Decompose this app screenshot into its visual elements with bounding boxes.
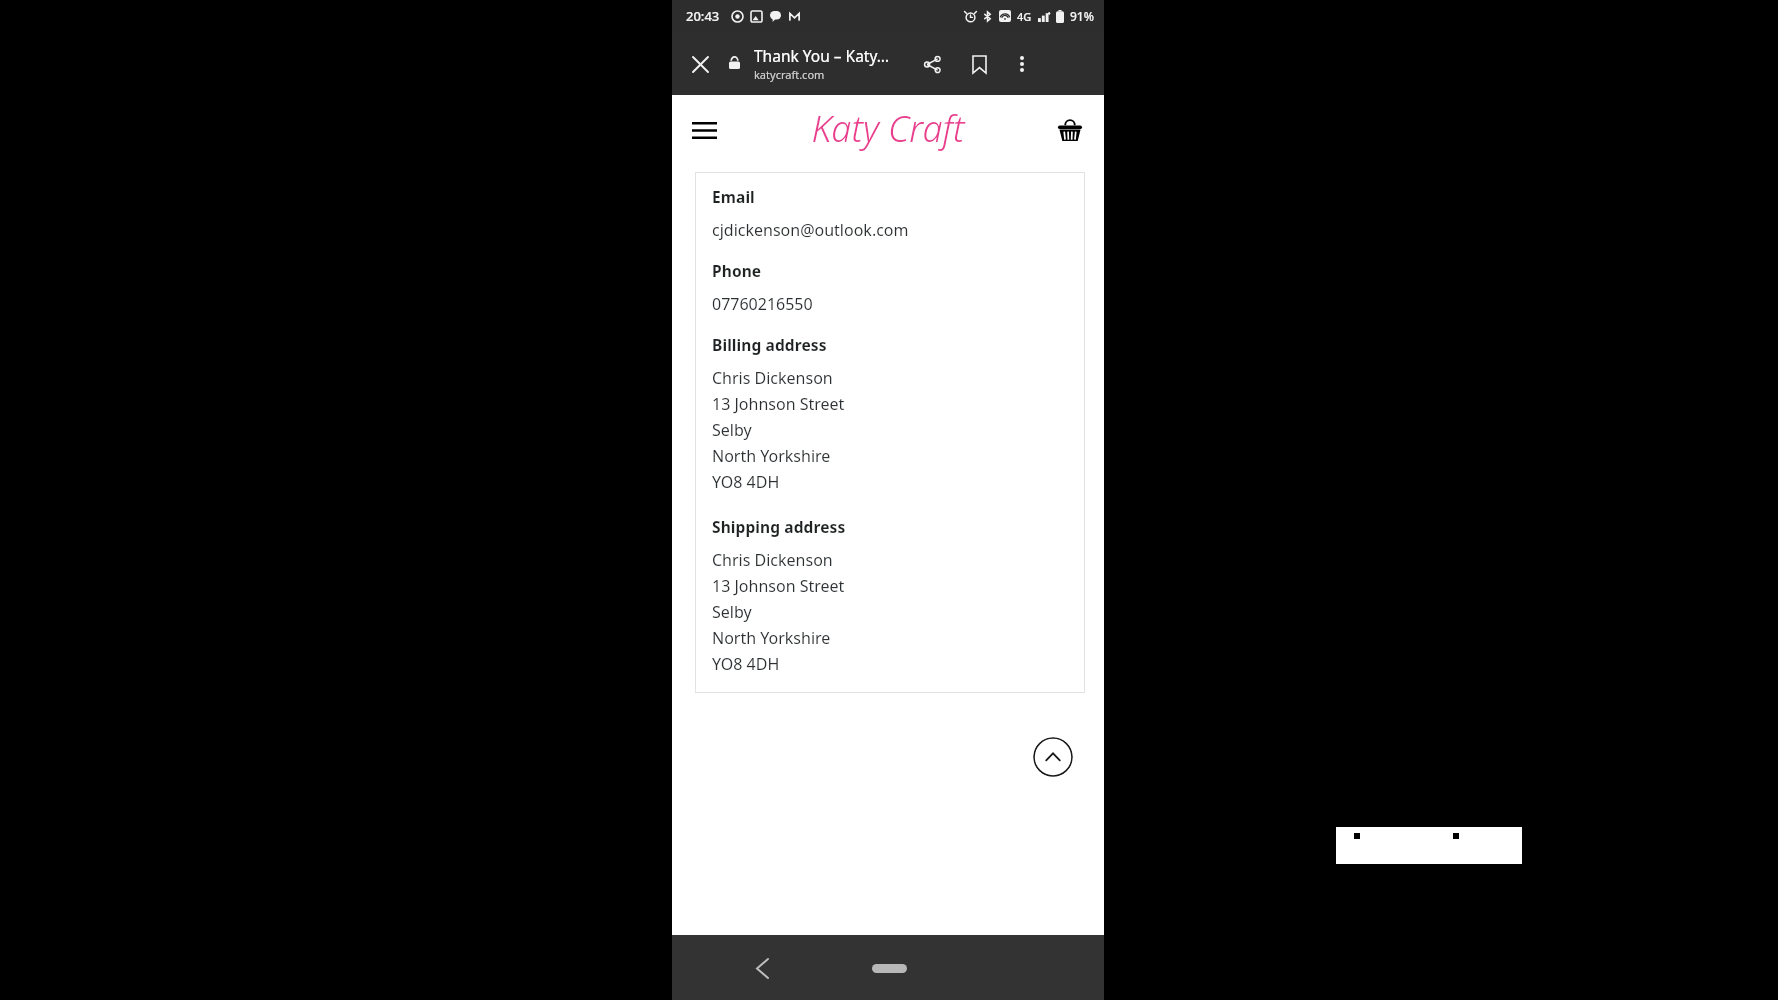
button[interactable]: Home — [861, 946, 917, 990]
button[interactable]: Scroll to top — [1033, 737, 1073, 777]
button[interactable]: Back — [740, 946, 784, 990]
staticText: 13 Johnson Street — [712, 393, 845, 415]
button[interactable]: Share — [912, 44, 952, 84]
staticText: YO8 4DH — [712, 653, 780, 675]
staticText: cjdickenson@outlook.com — [712, 219, 909, 241]
staticText: Selby — [712, 419, 752, 441]
staticText: Phone — [712, 260, 762, 281]
staticText: katycraft.com — [754, 67, 825, 82]
staticText: 4G — [1017, 9, 1032, 24]
staticText: North Yorkshire — [712, 445, 831, 467]
staticText: 91% — [1070, 8, 1094, 24]
button[interactable]: More options — [1002, 44, 1042, 84]
button[interactable]: Close — [682, 46, 718, 82]
staticText: 13 Johnson Street — [712, 575, 845, 597]
staticText: Shipping address — [712, 516, 846, 537]
button[interactable]: Basket — [1048, 108, 1092, 152]
staticText: Chris Dickenson — [712, 549, 833, 571]
staticText: Katy Craft — [811, 104, 965, 153]
staticText: Selby — [712, 601, 752, 623]
staticText: 07760216550 — [712, 293, 813, 315]
button[interactable]: Bookmark — [959, 44, 999, 84]
staticText: Email — [712, 186, 755, 207]
staticText: Thank You – Katy… — [754, 45, 889, 66]
staticText: Chris Dickenson — [712, 367, 833, 389]
staticText: North Yorkshire — [712, 627, 831, 649]
staticText: 20:43 — [686, 7, 720, 25]
staticText: YO8 4DH — [712, 471, 780, 493]
button[interactable]: Thank You – Katy… — [754, 45, 939, 82]
button[interactable]: Menu — [682, 108, 726, 152]
staticText: Billing address — [712, 334, 827, 355]
